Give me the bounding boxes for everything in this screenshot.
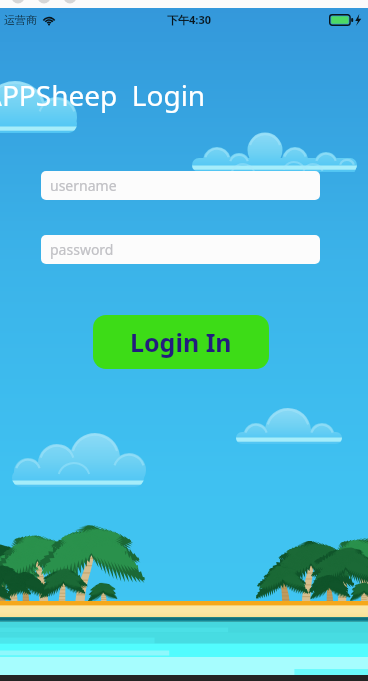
staticText: Login In <box>130 325 232 359</box>
button[interactable]: Login In <box>93 315 269 369</box>
staticText: 下午4:30 <box>167 12 211 27</box>
staticText: 运营商 <box>4 13 37 27</box>
staticText: APPSheep Login <box>0 76 206 114</box>
staticText: username <box>50 176 117 195</box>
button[interactable]: username <box>41 171 320 200</box>
button[interactable]: password <box>41 235 320 264</box>
staticText: password <box>50 240 114 259</box>
